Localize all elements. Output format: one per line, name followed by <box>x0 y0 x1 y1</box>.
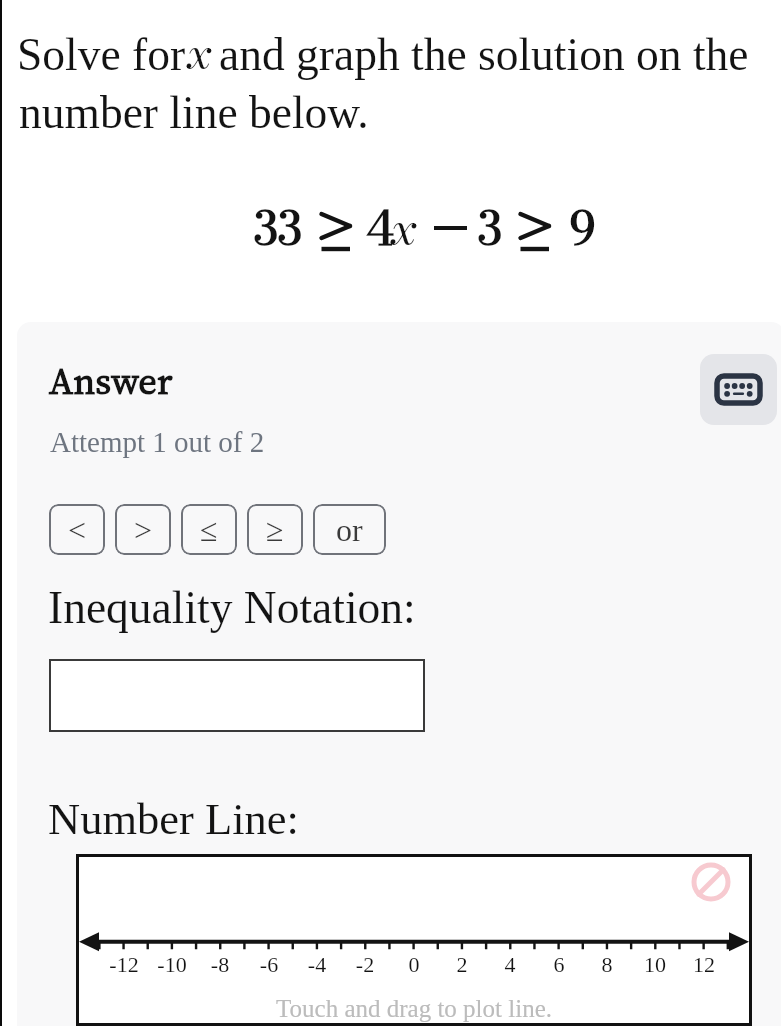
staticText: -12 <box>99 952 149 976</box>
staticText: > <box>134 512 153 547</box>
staticText: ≤ <box>200 512 218 547</box>
button[interactable] <box>49 659 425 732</box>
staticText: -6 <box>244 952 294 976</box>
staticText: -8 <box>195 952 245 976</box>
staticText: and graph the solution on the <box>219 29 749 79</box>
staticText: 12 <box>679 952 729 976</box>
staticText: 33 <box>254 193 302 263</box>
staticText: -4 <box>292 952 342 976</box>
staticText: or <box>336 512 363 547</box>
staticText: 8 <box>582 952 632 976</box>
staticText: -10 <box>147 952 197 976</box>
staticText: Number Line: <box>48 794 299 843</box>
staticText: 4 <box>366 193 394 263</box>
button[interactable]: ≤ <box>181 504 237 555</box>
staticText: Solve for <box>17 29 186 79</box>
staticText: Inequality Notation: <box>48 582 416 632</box>
staticText: Touch and drag to plot line. <box>76 995 752 1023</box>
staticText: < <box>68 512 87 547</box>
staticText: ≥ <box>266 512 284 547</box>
button[interactable]: Clear number line <box>691 862 731 902</box>
button[interactable]: or <box>313 504 386 555</box>
button[interactable]: < <box>49 504 105 555</box>
staticText: 0 <box>389 952 439 976</box>
button[interactable]: > <box>115 504 171 555</box>
staticText: 4 <box>485 952 535 976</box>
button[interactable]: Show keyboard <box>700 354 777 425</box>
staticText: -2 <box>340 952 390 976</box>
staticText: Attempt 1 out of 2 <box>50 426 265 458</box>
staticText: Answer <box>49 356 173 406</box>
staticText: x <box>392 193 417 263</box>
staticText: 9 <box>570 193 596 263</box>
staticText: number line below. <box>19 87 369 137</box>
staticText: x <box>188 19 212 86</box>
staticText: 2 <box>437 952 487 976</box>
staticText: 10 <box>630 952 680 976</box>
staticText: 6 <box>534 952 584 976</box>
button[interactable]: ≥ <box>247 504 303 555</box>
staticText: 3 <box>478 193 502 263</box>
